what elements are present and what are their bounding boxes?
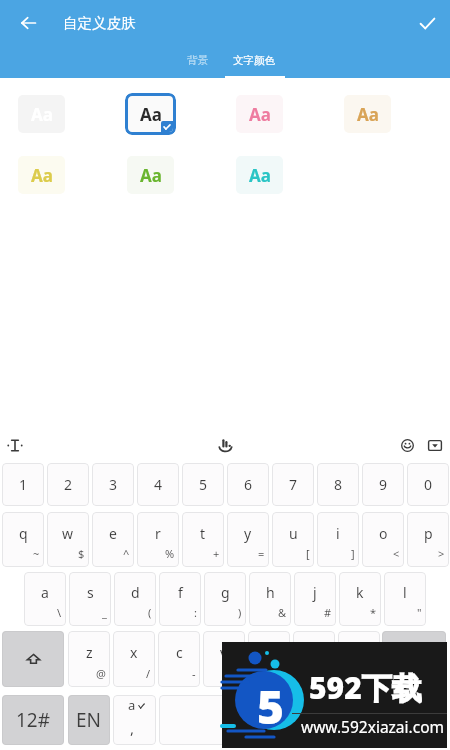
button[interactable]: 5 [182,463,224,506]
staticText: ] [351,546,355,561]
staticText: b [265,643,274,662]
staticText: % [165,546,175,561]
staticText: y [244,524,252,543]
button[interactable]: 4 [137,463,179,506]
staticText: Aa [249,103,271,126]
staticText: x [130,643,138,662]
button[interactable]: Aa [125,93,176,135]
button[interactable]: r [137,512,179,567]
staticText: r [155,524,161,543]
staticText: c [176,643,183,662]
staticText: ~ [33,546,40,561]
staticText: p [424,524,433,543]
staticText: q [19,524,28,543]
staticText: " [417,605,422,620]
button[interactable]: 2 [47,463,89,506]
staticText: www.592xiazai.com [301,716,445,737]
button[interactable]: Aa [18,156,65,194]
button[interactable]: 背景 [171,47,223,78]
staticText: / [146,666,151,681]
staticText: k [356,583,364,602]
staticText: > [438,546,445,561]
staticText: 8 [334,475,343,494]
button[interactable]: v [203,631,245,687]
button[interactable]: s [69,572,111,626]
button[interactable]: u [272,512,314,567]
button[interactable]: Confirm [408,4,446,42]
staticText: $ [78,546,85,561]
button[interactable]: 文字颜色 [227,47,281,78]
button[interactable]: Back [10,5,46,41]
button[interactable]: f [159,572,201,626]
button[interactable]: g [204,572,246,626]
button[interactable]: 0 [407,463,449,506]
button[interactable]: e [92,512,134,567]
button[interactable]: 1 [2,463,44,506]
staticText: ; [328,666,331,681]
button[interactable]: 7 [272,463,314,506]
button[interactable]: Emoji [396,434,418,456]
staticText: Aa [357,103,379,126]
button[interactable]: a [113,695,156,745]
button[interactable]: Aa [18,95,65,133]
button[interactable]: l [384,572,426,626]
staticText: Aa [31,164,53,187]
staticText: Aa [31,103,53,126]
button[interactable]: x [113,631,155,687]
button[interactable]: 3 [92,463,134,506]
button[interactable]: i [317,512,359,567]
button[interactable]: Hide keyboard [424,434,446,456]
button[interactable]: n [293,631,335,687]
staticText: Aa [140,103,162,126]
staticText: j [313,583,317,602]
staticText: 0 [424,475,433,494]
staticText: [ [306,546,310,561]
button[interactable] [323,695,446,745]
staticText: 2 [64,475,73,494]
button[interactable]: Aa [236,156,283,194]
button[interactable]: EN [68,695,110,745]
button[interactable]: Handwriting [214,434,236,456]
button[interactable]: z [68,631,110,687]
button[interactable]: Aa [344,95,391,133]
button[interactable]: d [114,572,156,626]
staticText: 7 [289,475,298,494]
button[interactable]: y [227,512,269,567]
staticText: 4 [154,475,163,494]
staticText: & [278,605,287,620]
staticText: ! [238,666,241,681]
staticText: ^ [123,546,130,561]
button[interactable]: h [249,572,291,626]
staticText: f [178,583,183,602]
staticText: + [213,546,220,561]
button[interactable]: Backspace [382,631,446,687]
button[interactable]: w [47,512,89,567]
button[interactable]: b [248,631,290,687]
button[interactable]: p [407,512,449,567]
button[interactable]: k [339,572,381,626]
staticText: \ [57,605,62,620]
button[interactable]: t [182,512,224,567]
button[interactable]: 6 [227,463,269,506]
staticText: 5 [257,675,284,738]
button[interactable]: Aa [236,95,283,133]
button[interactable]: Aa [127,156,174,194]
button[interactable]: j [294,572,336,626]
button[interactable]: Move cursor [4,434,26,456]
staticText: : [194,605,197,620]
button[interactable]: q [2,512,44,567]
button[interactable]: 9 [362,463,404,506]
button[interactable]: 8 [317,463,359,506]
button[interactable]: Shift [2,631,64,687]
button[interactable]: 12# [2,695,64,745]
staticText: Aa [249,164,271,187]
button[interactable] [159,695,320,745]
button[interactable]: a [24,572,66,626]
button[interactable]: c [158,631,200,687]
staticText: 12# [16,707,51,733]
button[interactable]: o [362,512,404,567]
staticText: 文字颜色 [233,54,275,67]
staticText: v [220,643,228,662]
button[interactable]: m [338,631,380,687]
